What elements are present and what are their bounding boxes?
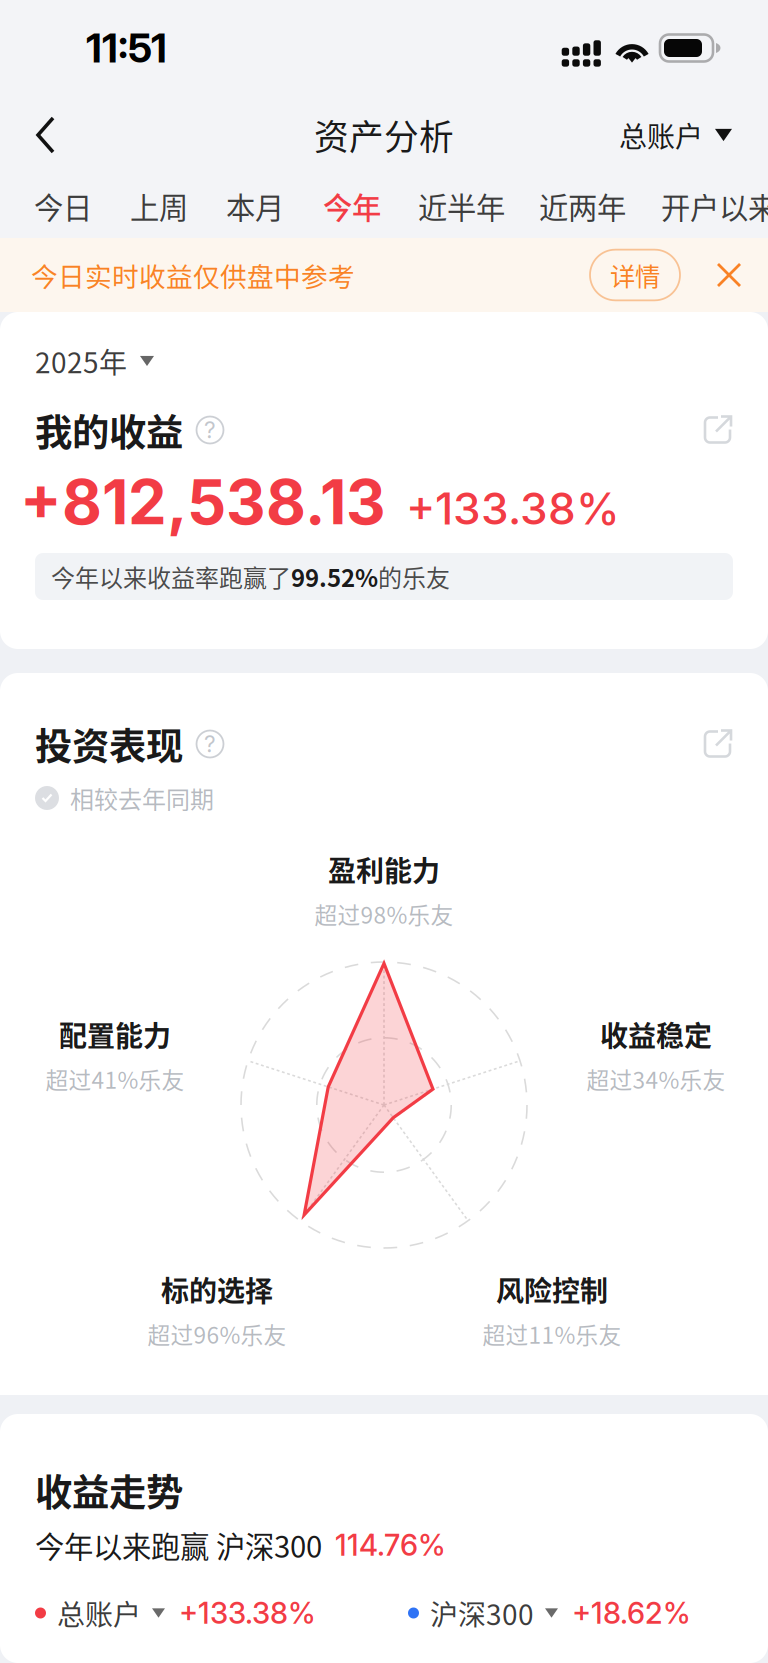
staticText: 收益稳定 <box>600 1014 712 1054</box>
staticText: 盈利能力 <box>328 849 440 889</box>
staticText: +812,538.13 <box>20 465 386 539</box>
staticText: 11:51 <box>86 24 167 72</box>
staticText: 今年以来跑赢 沪深300 <box>35 1524 322 1566</box>
staticText: 超过41%乐友 <box>45 1062 184 1095</box>
button[interactable]: Close <box>680 246 768 304</box>
button[interactable]: 总账户 <box>595 101 768 169</box>
staticText: 今日实时收益仅供盘中参考 <box>31 256 355 294</box>
staticText: 总账户 <box>619 115 703 155</box>
staticText: 收益走势 <box>35 1463 183 1517</box>
button[interactable]: 上周 <box>130 173 188 239</box>
staticText: +18.62% <box>572 1595 691 1631</box>
staticText: 风险控制 <box>496 1269 608 1309</box>
staticText: +133.38% <box>179 1595 316 1631</box>
staticText: 资产分析 <box>314 110 454 160</box>
button[interactable]: 今日 <box>34 173 92 239</box>
staticText: 114.76% <box>335 1527 446 1563</box>
staticText: 详情 <box>610 257 660 293</box>
staticText: 近两年 <box>539 185 626 227</box>
button[interactable]: 本月 <box>226 173 284 239</box>
button[interactable]: Back <box>0 102 84 168</box>
staticText: 超过96%乐友 <box>147 1317 286 1350</box>
staticText: ? <box>204 416 216 444</box>
staticText: 今日 <box>34 185 92 227</box>
staticText: 沪深300 <box>430 1593 534 1633</box>
staticText: 总账户 <box>57 1593 141 1633</box>
staticText: 超过11%乐友 <box>482 1317 621 1350</box>
button[interactable]: Share <box>700 726 735 761</box>
staticText: 上周 <box>130 185 188 227</box>
staticText: 今年 <box>323 185 381 227</box>
staticText: 99.52% <box>291 559 378 594</box>
button[interactable]: 近半年 <box>418 173 505 239</box>
button[interactable]: 今年 <box>323 173 381 239</box>
button[interactable]: 近两年 <box>539 173 626 239</box>
button[interactable]: 2025年 <box>35 346 154 376</box>
button[interactable]: 详情 <box>590 250 680 300</box>
staticText: 近半年 <box>418 185 505 227</box>
staticText: +133.38% <box>406 482 620 535</box>
button[interactable]: 总账户 <box>35 1589 316 1637</box>
staticText: 配置能力 <box>59 1014 171 1054</box>
staticText: ? <box>204 730 216 758</box>
button[interactable]: 开户以来 <box>661 173 768 239</box>
staticText: 的乐友 <box>378 559 450 594</box>
staticText: 本月 <box>226 185 284 227</box>
staticText: 标的选择 <box>161 1269 273 1309</box>
staticText: 超过98%乐友 <box>314 897 453 930</box>
button[interactable]: Share <box>700 412 735 447</box>
staticText: 开户以来 <box>661 185 768 227</box>
button[interactable]: 沪深300 <box>408 1589 691 1637</box>
staticText: 我的收益 <box>35 403 183 457</box>
staticText: 2025年 <box>35 341 127 381</box>
staticText: 相较去年同期 <box>70 781 214 815</box>
staticText: 今年以来收益率跑赢了 <box>51 559 291 594</box>
staticText: 超过34%乐友 <box>586 1062 725 1095</box>
staticText: 投资表现 <box>35 717 183 771</box>
